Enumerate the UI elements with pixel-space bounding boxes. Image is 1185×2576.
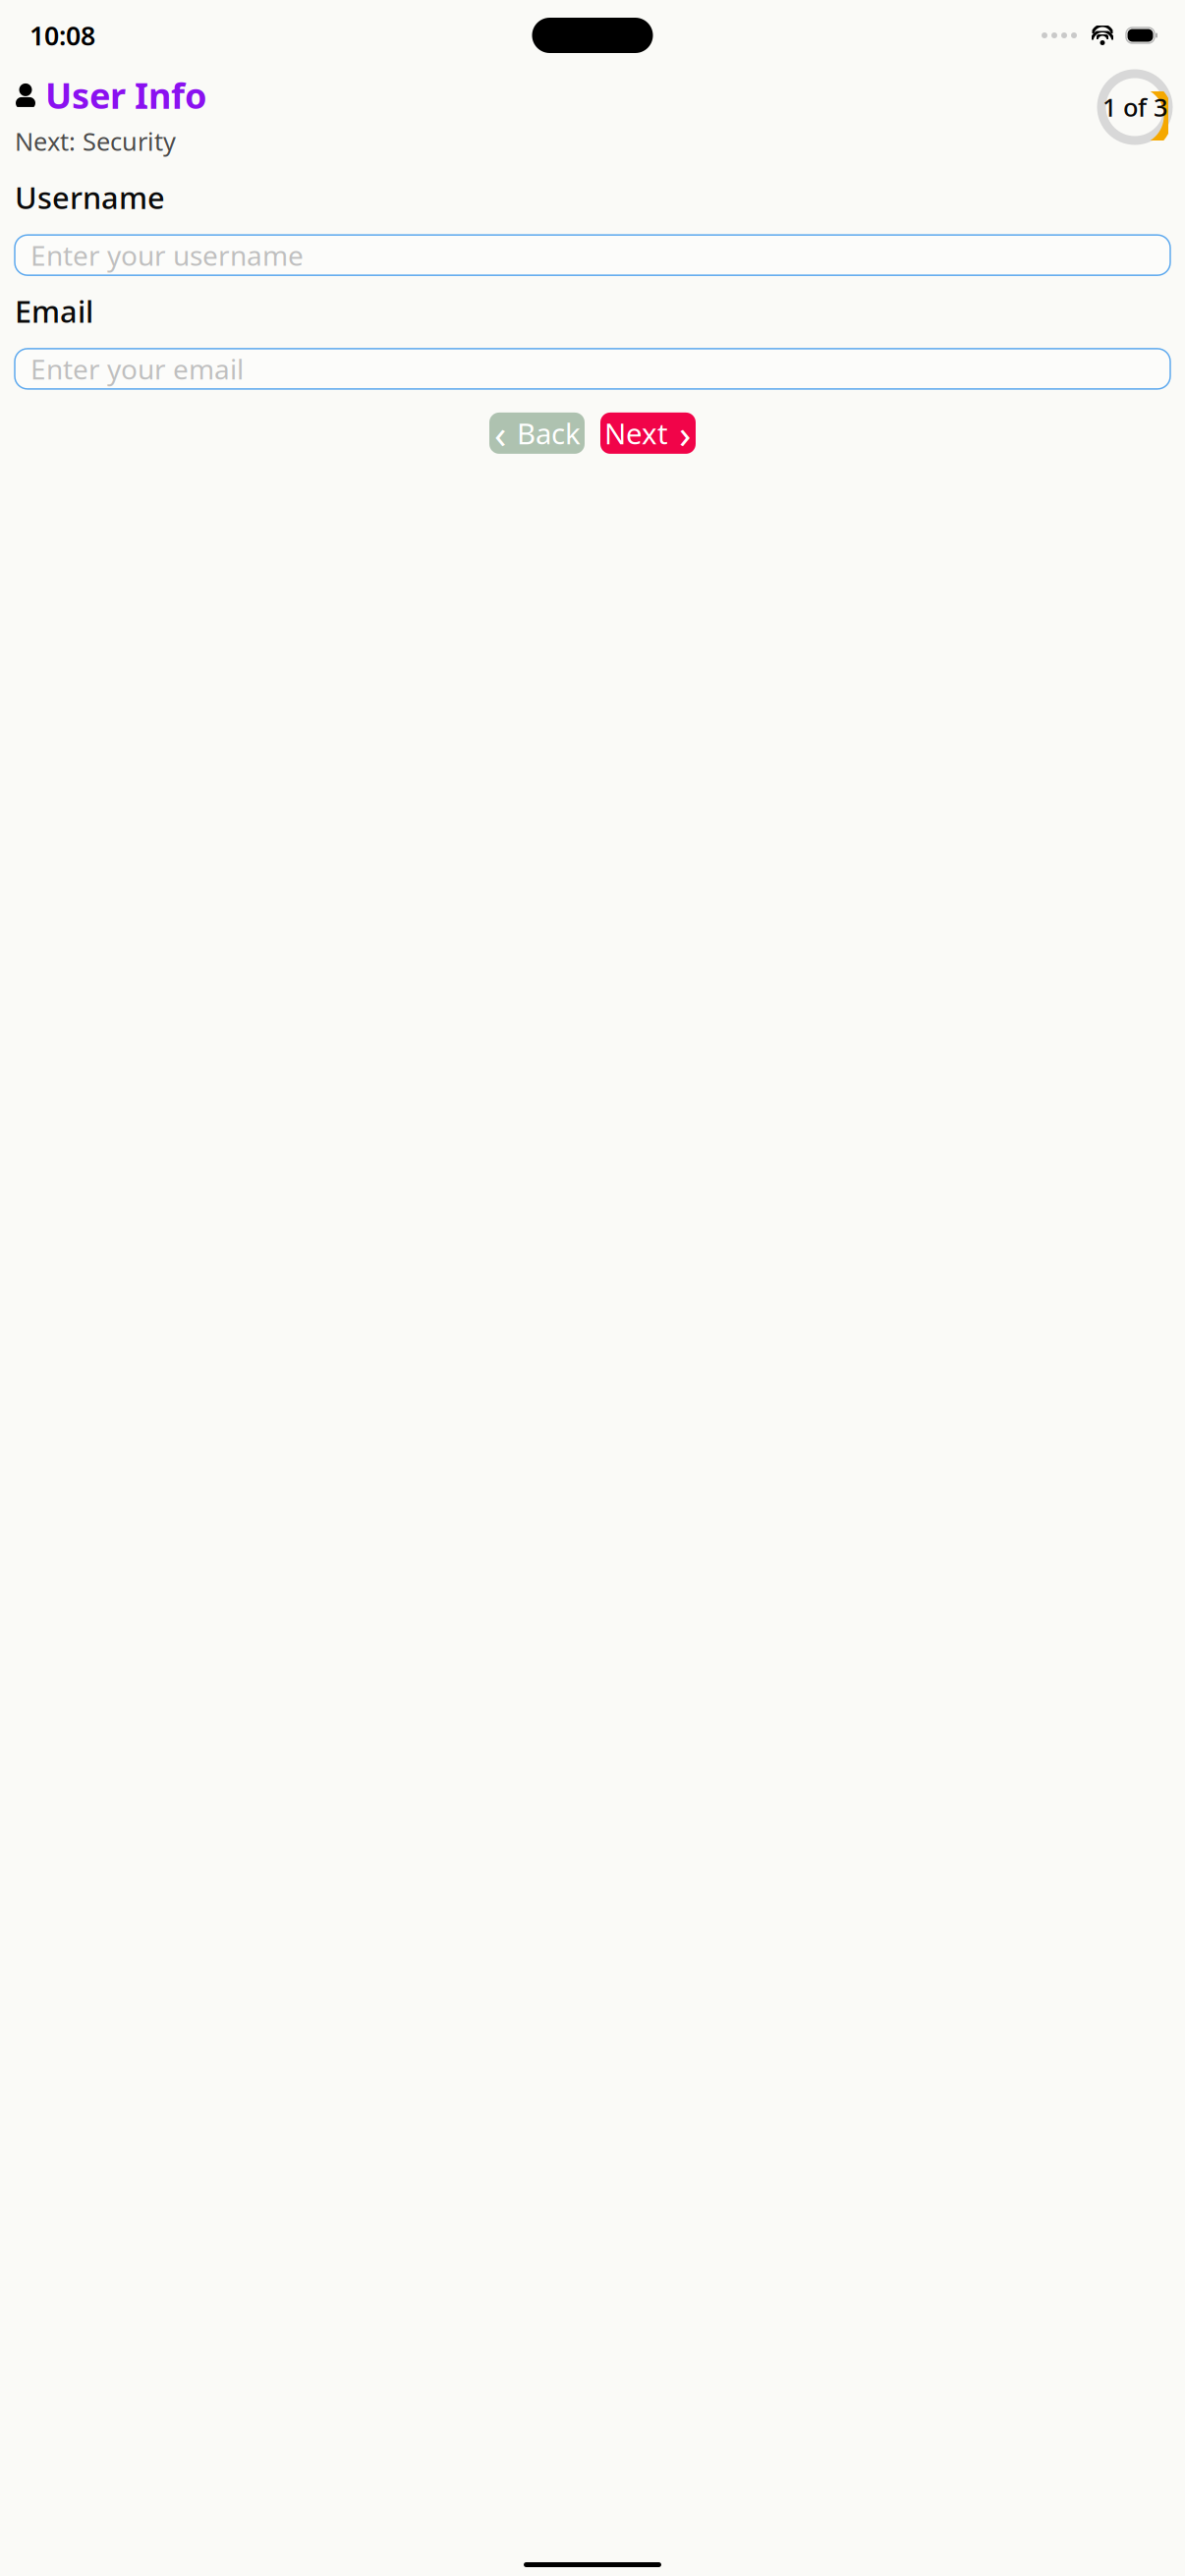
staticText: Enter your username (30, 237, 304, 273)
button[interactable]: Next (600, 413, 696, 454)
staticText: User Info (45, 72, 207, 119)
button[interactable]: Enter your username (15, 235, 1170, 275)
staticText: › (679, 407, 691, 459)
staticText: Username (15, 177, 165, 217)
staticText: 1 of 3 (1102, 91, 1167, 124)
staticText: Email (15, 291, 93, 331)
staticText: Next (604, 414, 668, 452)
button[interactable]: Enter your email (15, 349, 1170, 389)
staticText: Enter your email (30, 351, 244, 387)
button[interactable]: ‹ (489, 413, 585, 454)
staticText: Back (517, 414, 581, 452)
staticText: 10:08 (29, 18, 95, 53)
staticText: ‹ (494, 407, 506, 459)
staticText: Next: Security (15, 125, 176, 158)
